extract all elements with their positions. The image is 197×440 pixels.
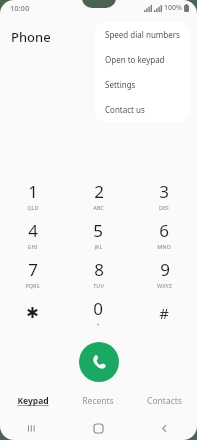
staticText: 9 — [160, 258, 170, 281]
staticText: ✱ — [26, 304, 39, 321]
button[interactable]: Back — [131, 416, 197, 440]
staticText: ABC — [93, 204, 104, 211]
button[interactable]: Open to keypad — [95, 47, 190, 72]
staticText: 8 — [94, 258, 104, 281]
button[interactable]: # — [131, 293, 197, 332]
button[interactable]: 6 — [131, 215, 197, 254]
button[interactable]: 2 — [65, 176, 131, 215]
button[interactable]: 8 — [65, 254, 131, 293]
staticText: GHI — [27, 243, 38, 250]
staticText: Contacts — [147, 395, 182, 407]
staticText: 1 — [28, 180, 38, 203]
staticText: WXYZ — [157, 282, 172, 289]
button[interactable]: ✱ — [0, 293, 65, 332]
button[interactable]: Settings — [95, 72, 190, 97]
staticText: # — [159, 303, 169, 323]
button[interactable]: Call — [79, 342, 119, 382]
staticText: 0 — [93, 297, 103, 320]
staticText: 10:00 — [10, 3, 30, 13]
staticText: 100% — [164, 3, 182, 13]
staticText: QLD — [27, 204, 39, 211]
staticText: MNO — [157, 243, 171, 250]
staticText: Contact us — [105, 104, 145, 115]
staticText: JKL — [94, 243, 103, 250]
staticText: 6 — [159, 219, 169, 242]
button[interactable]: 0 — [65, 293, 131, 332]
staticText: 7 — [28, 258, 38, 281]
button[interactable]: Recents — [65, 390, 131, 412]
staticText: Keypad — [17, 395, 49, 407]
staticText: 5 — [93, 219, 103, 242]
staticText: TUV — [93, 282, 104, 289]
button[interactable]: Speed dial numbers — [95, 22, 190, 47]
staticText: PQRS — [25, 282, 40, 289]
staticText: Settings — [105, 79, 136, 90]
staticText: 2 — [94, 180, 104, 203]
button[interactable]: Keypad — [0, 390, 65, 412]
staticText: 3 — [159, 180, 169, 203]
staticText: Speed dial numbers — [105, 29, 180, 40]
staticText: Phone — [11, 28, 51, 46]
button[interactable]: Recent apps — [0, 416, 65, 440]
button[interactable]: Home — [65, 416, 131, 440]
button[interactable]: 5 — [65, 215, 131, 254]
button[interactable]: 1 — [0, 176, 65, 215]
staticText: Recents — [82, 395, 114, 407]
button[interactable]: 3 — [131, 176, 197, 215]
button[interactable]: Contacts — [131, 390, 197, 412]
button[interactable]: 7 — [0, 254, 65, 293]
staticText: DEF — [159, 204, 169, 211]
staticText: 4 — [28, 219, 38, 242]
button[interactable]: Contact us — [95, 97, 190, 122]
staticText: + — [96, 321, 100, 328]
staticText: Open to keypad — [105, 54, 165, 65]
button[interactable]: 4 — [0, 215, 65, 254]
button[interactable]: 9 — [131, 254, 197, 293]
